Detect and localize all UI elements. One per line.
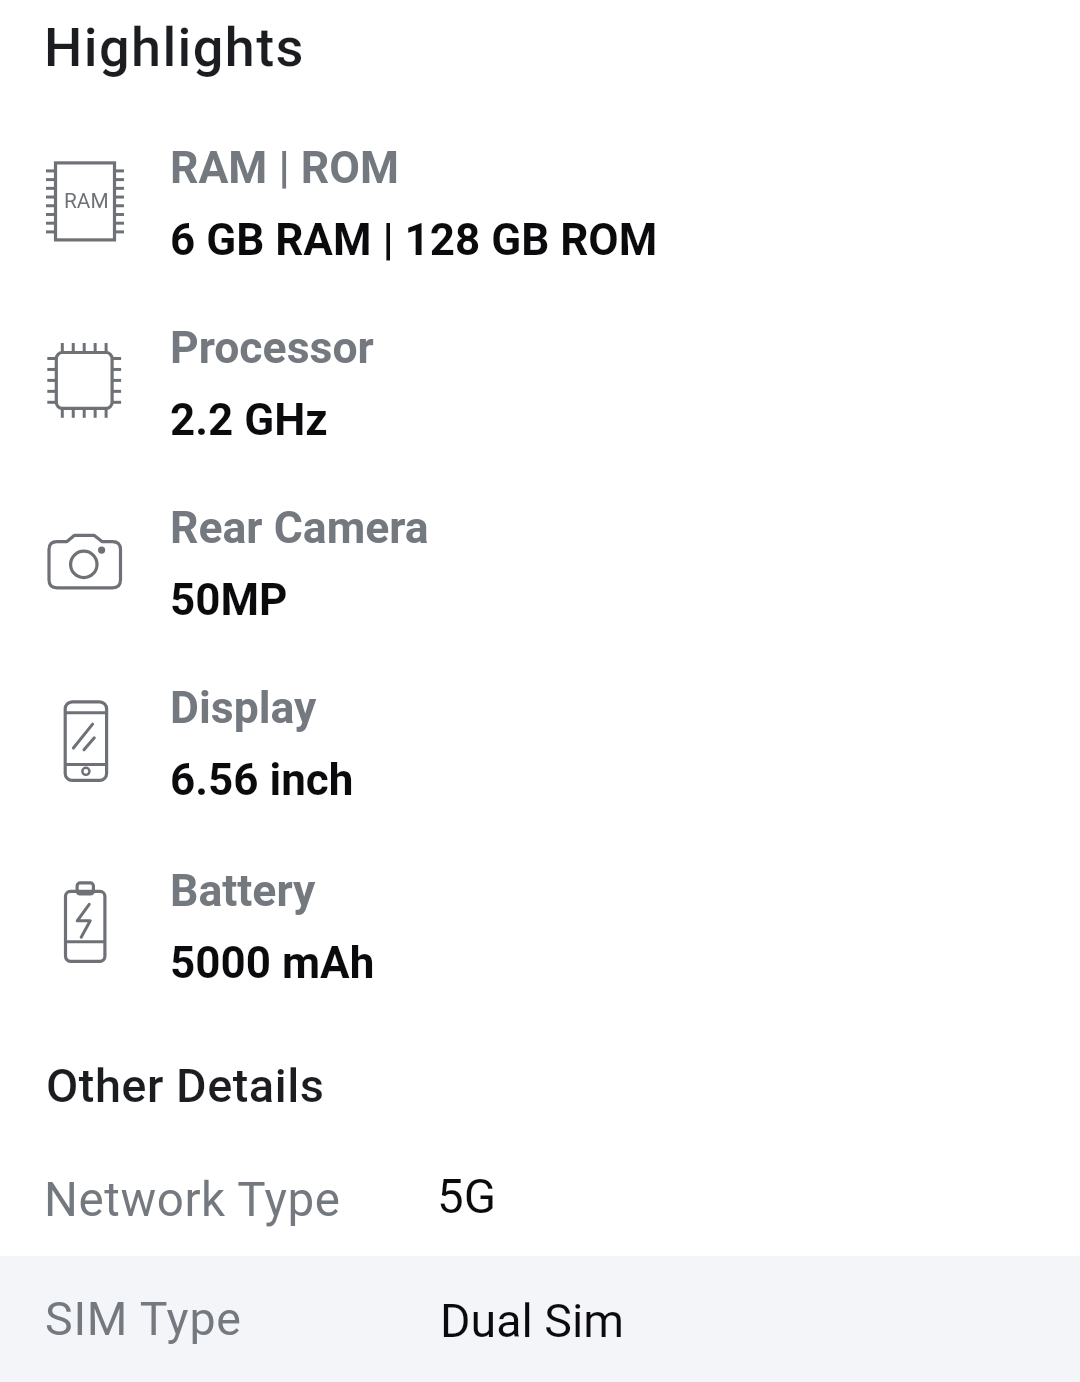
staticText: Network Type — [44, 1172, 341, 1228]
other: RAM | ROM — [40, 162, 136, 246]
staticText: 6 GB RAM | 128 GB ROM — [170, 214, 658, 266]
staticText: Dual Sim — [440, 1294, 624, 1348]
other: Processor — [40, 341, 136, 425]
button[interactable]: SIM Type — [0, 1256, 1080, 1382]
other: Display — [40, 701, 136, 785]
other: Battery — [40, 881, 136, 965]
other: Rear Camera — [40, 523, 136, 607]
staticText: RAM | ROM — [170, 142, 399, 194]
staticText: 5000 mAh — [170, 937, 375, 989]
button[interactable]: Rear Camera — [0, 488, 1080, 668]
staticText: 6.56 inch — [170, 754, 354, 806]
staticText: 2.2 GHz — [170, 394, 328, 446]
staticText: Display — [170, 682, 317, 734]
button[interactable]: Display — [0, 668, 1080, 848]
staticText: Rear Camera — [170, 502, 429, 554]
staticText: SIM Type — [45, 1292, 242, 1346]
staticText: 5G — [437, 1169, 497, 1225]
staticText: Processor — [170, 322, 374, 374]
staticText: Other Details — [46, 1059, 325, 1114]
staticText: Battery — [170, 865, 316, 917]
button[interactable]: Network Type — [0, 1133, 1080, 1256]
staticText: RAM — [64, 189, 109, 213]
staticText: 50MP — [170, 574, 288, 626]
button[interactable]: RAM | ROM — [0, 128, 1080, 308]
staticText: Highlights — [44, 16, 305, 79]
button[interactable]: Battery — [0, 851, 1080, 1031]
button[interactable]: Processor — [0, 308, 1080, 488]
